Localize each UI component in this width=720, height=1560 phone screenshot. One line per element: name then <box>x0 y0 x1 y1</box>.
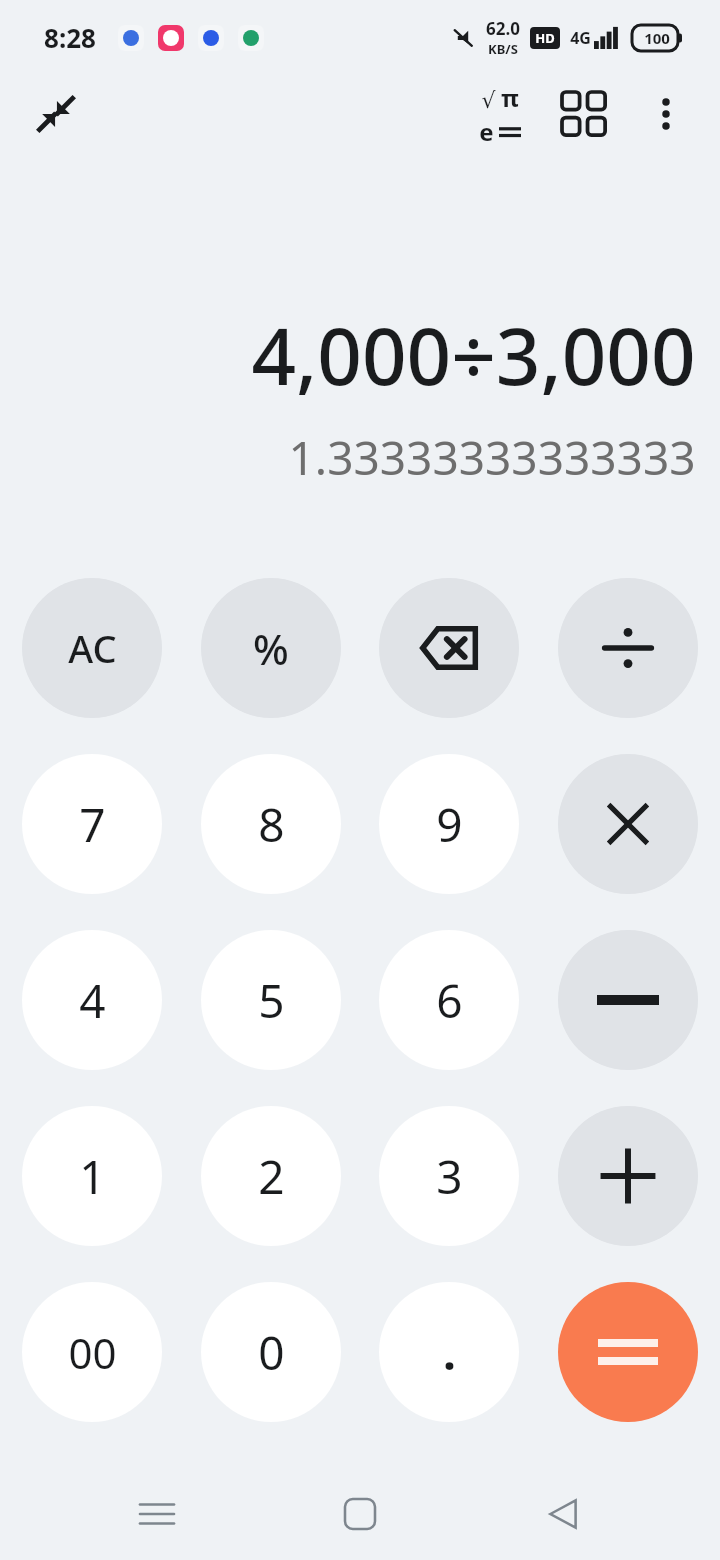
button[interactable]: Home <box>314 1468 406 1560</box>
button[interactable]: Backspace <box>379 578 519 718</box>
staticText: 4,000÷3,000 <box>251 302 696 408</box>
button[interactable]: 2 <box>201 1106 341 1246</box>
button[interactable]: 3 <box>379 1106 519 1246</box>
staticText: π <box>501 81 519 114</box>
staticText: 7 <box>79 793 106 856</box>
button[interactable]: Back <box>517 1468 609 1560</box>
staticText: 4G <box>570 27 591 49</box>
button[interactable]: Equals <box>558 1282 698 1422</box>
button[interactable]: More options <box>630 78 702 150</box>
button[interactable]: Divide <box>558 578 698 718</box>
staticText: e <box>479 115 494 148</box>
button[interactable]: Plus <box>558 1106 698 1246</box>
staticText: 5 <box>258 969 285 1032</box>
button[interactable]: 7 <box>22 754 162 894</box>
staticText: . <box>443 1321 456 1384</box>
staticText: 3 <box>436 1145 463 1208</box>
staticText: % <box>253 620 289 677</box>
button[interactable]: . <box>379 1282 519 1422</box>
button[interactable]: Scientific <box>464 78 536 150</box>
button[interactable]: % <box>201 578 341 718</box>
staticText: 2 <box>258 1145 285 1208</box>
button[interactable]: Minus <box>558 930 698 1070</box>
button[interactable]: 8 <box>201 754 341 894</box>
staticText: 1 <box>79 1145 106 1208</box>
staticText: 0 <box>258 1321 285 1384</box>
staticText: √ <box>481 88 496 114</box>
staticText: 8:28 <box>44 20 96 55</box>
staticText: 1.33333333333333 <box>288 426 696 489</box>
button[interactable]: 1 <box>22 1106 162 1246</box>
button[interactable]: 00 <box>22 1282 162 1422</box>
staticText: 4 <box>79 969 106 1032</box>
button[interactable]: Recent apps <box>111 1468 203 1560</box>
staticText: 100 <box>644 28 670 48</box>
button[interactable]: 9 <box>379 754 519 894</box>
staticText: 00 <box>68 1324 117 1381</box>
button[interactable]: Collapse <box>20 78 92 150</box>
staticText: 9 <box>436 793 463 856</box>
button[interactable]: 4 <box>22 930 162 1070</box>
staticText: KB/S <box>488 40 518 58</box>
staticText: AC <box>68 622 117 674</box>
staticText: 6 <box>436 969 463 1032</box>
button[interactable]: 6 <box>379 930 519 1070</box>
button[interactable]: 5 <box>201 930 341 1070</box>
button[interactable]: Unit converter <box>548 78 620 150</box>
staticText: 62.0 <box>486 17 520 40</box>
button[interactable]: AC <box>22 578 162 718</box>
staticText: 8 <box>258 793 285 856</box>
staticText: HD <box>535 29 555 47</box>
button[interactable]: 0 <box>201 1282 341 1422</box>
button[interactable]: Multiply <box>558 754 698 894</box>
